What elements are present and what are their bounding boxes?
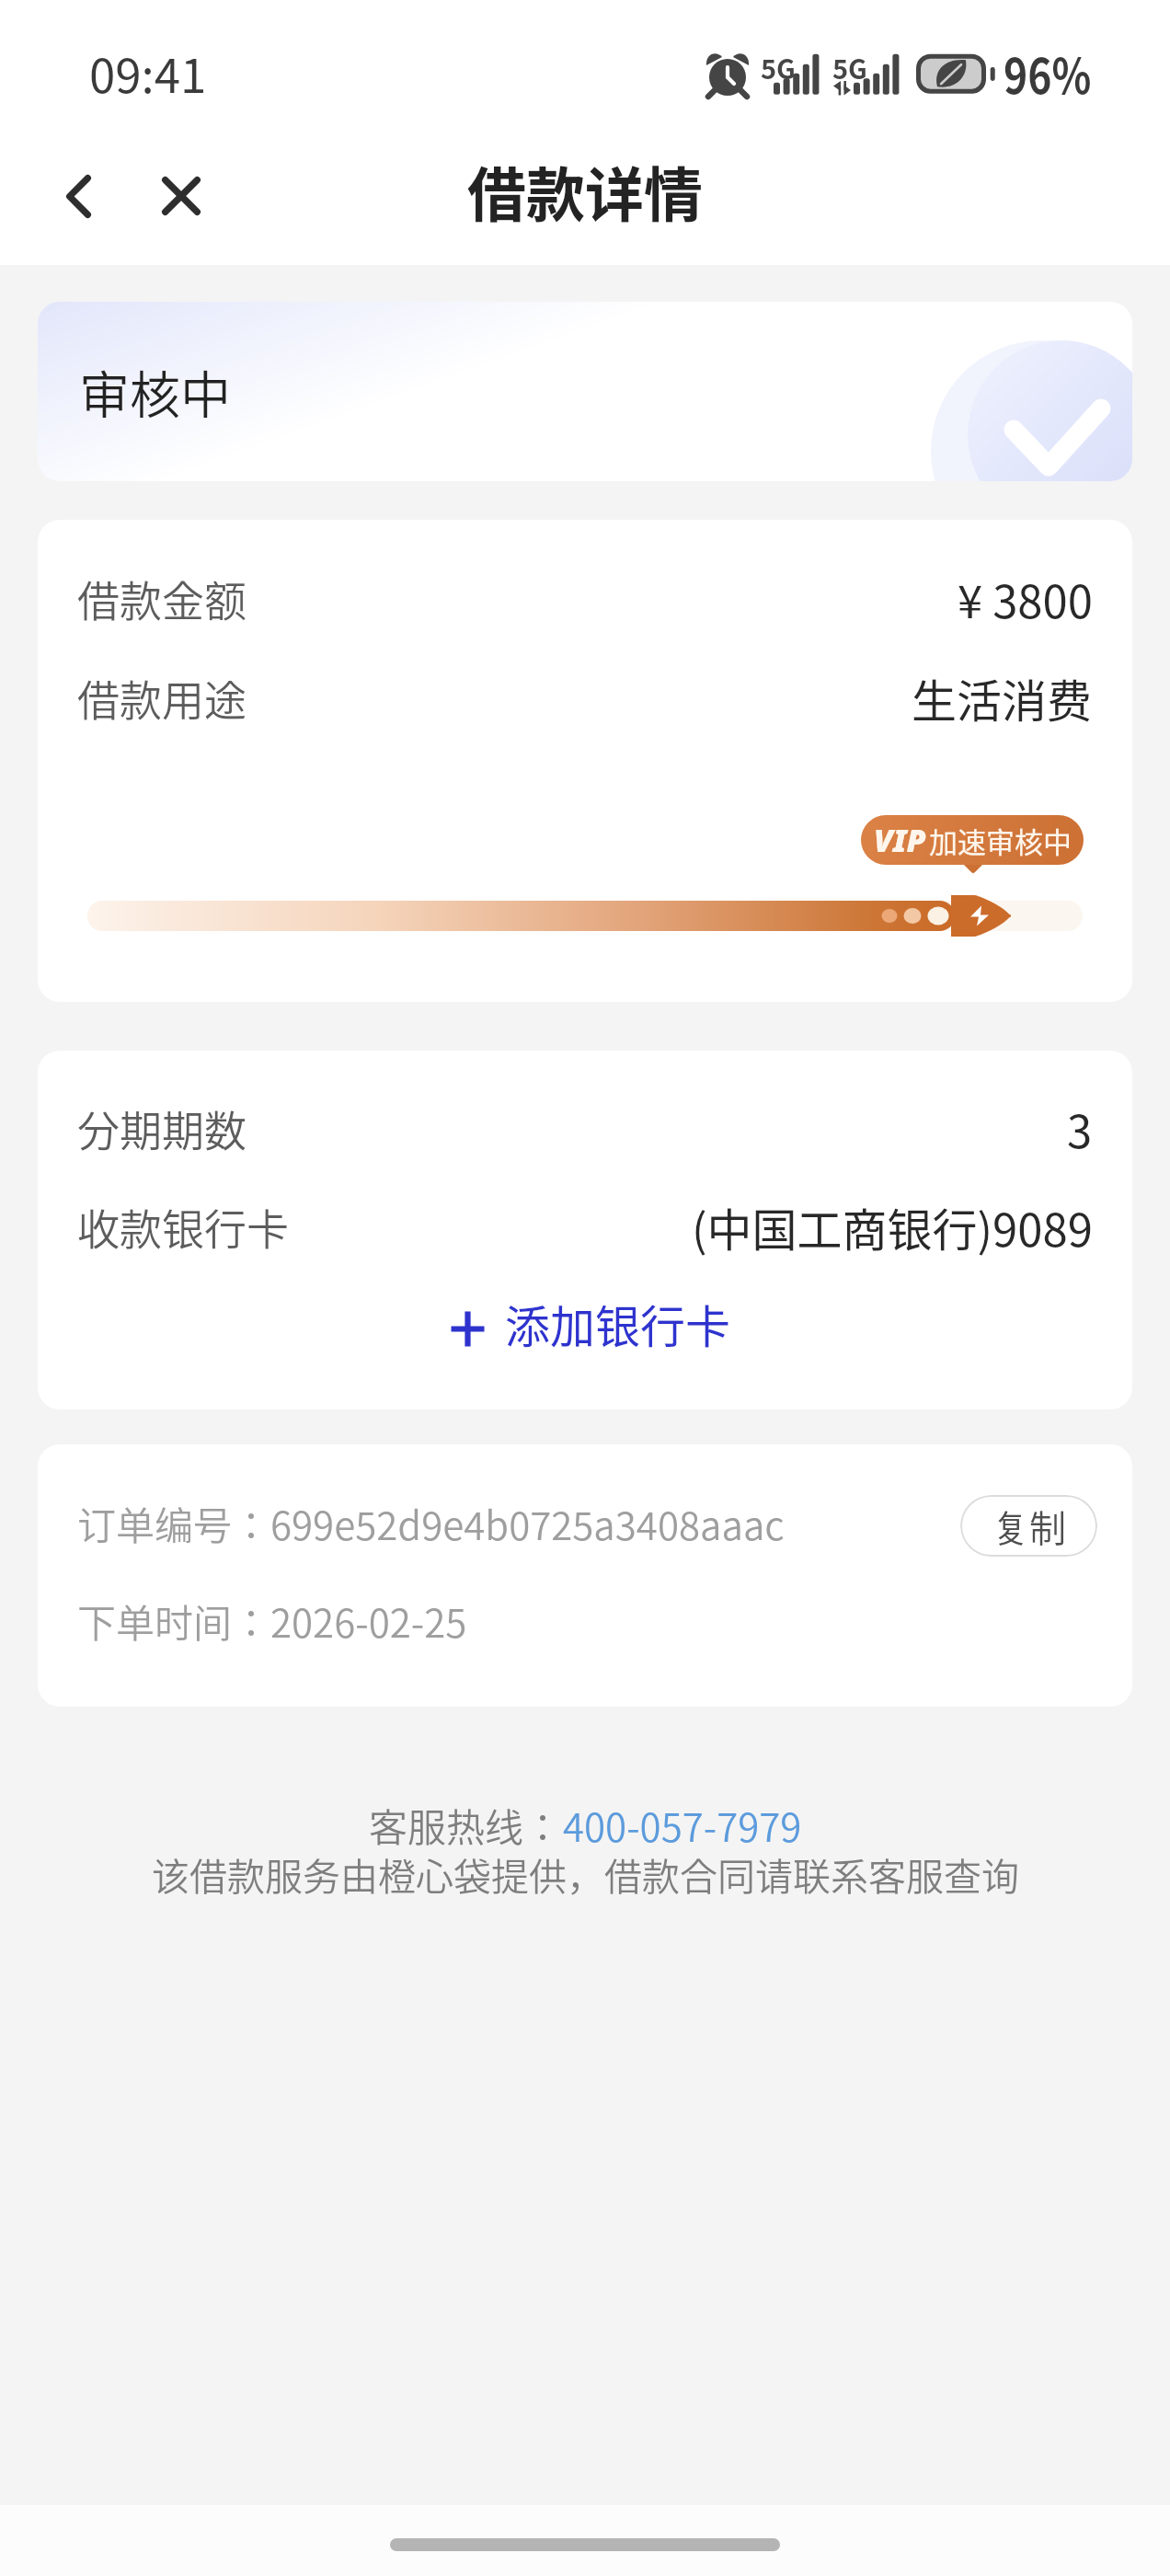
staticText: 下单时间：2026-02-25 <box>77 1593 467 1649</box>
staticText: 96% <box>1004 38 1092 109</box>
staticText: 借款金额 <box>77 568 247 629</box>
staticText: 添加银行卡 <box>505 1291 731 1350</box>
staticText: 分期期数 <box>77 1098 247 1159</box>
staticText: 审核中 <box>79 354 232 428</box>
staticText: ¥ 3800 <box>958 566 1093 631</box>
staticText: 5G <box>761 48 796 86</box>
staticText: 该借款服务由橙心袋提供，借款合同请联系客服查询 <box>152 1846 1019 1901</box>
staticText: 复制 <box>992 1500 1066 1553</box>
staticText: VIP <box>874 819 926 861</box>
staticText: 借款用途 <box>77 667 247 729</box>
staticText: 生活消费 <box>912 665 1093 730</box>
staticText: 订单编号：699e52d9e4b0725a3408aaac <box>77 1495 785 1551</box>
button[interactable]: 复制 <box>960 1495 1097 1557</box>
button[interactable]: 400-057-7979 <box>563 1797 802 1853</box>
staticText: 09:41 <box>89 39 207 107</box>
button[interactable]: Close <box>138 153 224 239</box>
staticText: 加速审核中 <box>929 820 1072 861</box>
button[interactable]: Back <box>35 153 121 239</box>
staticText: 客服热线： <box>369 1797 563 1853</box>
staticText: 5G <box>832 48 867 86</box>
staticText: 收款银行卡 <box>77 1196 289 1258</box>
staticText: 借款详情 <box>467 148 703 234</box>
staticText: 3 <box>1067 1096 1093 1161</box>
staticText: (中国工商银行)9089 <box>692 1194 1093 1259</box>
button[interactable]: 添加银行卡 <box>429 1291 753 1350</box>
